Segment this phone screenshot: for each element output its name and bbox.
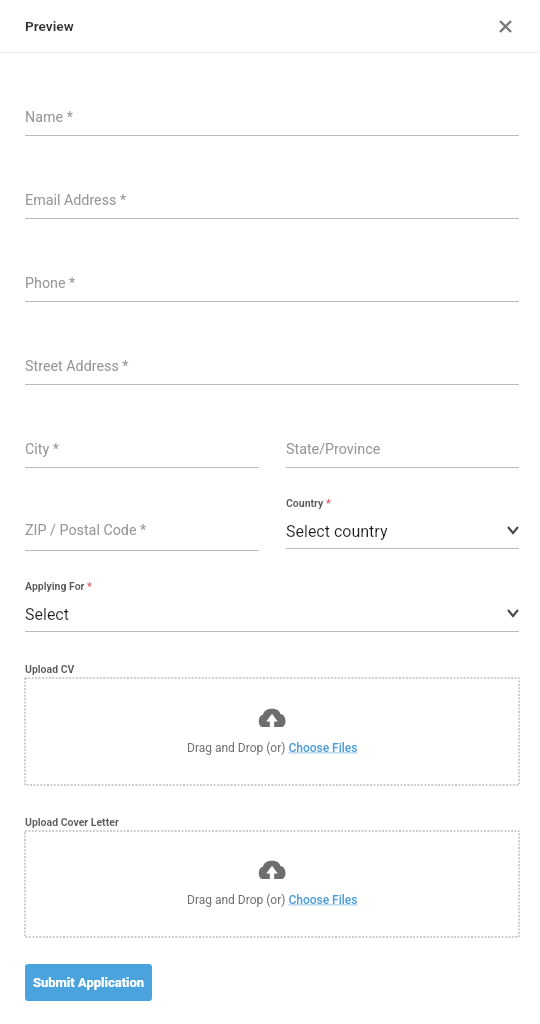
staticText: ZIP / Postal Code * xyxy=(25,522,147,539)
button[interactable]: Close xyxy=(490,11,520,41)
staticText: Name * xyxy=(25,109,73,126)
staticText: Street Address * xyxy=(25,358,129,375)
staticText: Preview xyxy=(25,18,74,34)
button[interactable]: Phone * xyxy=(25,277,519,302)
staticText: State/Province xyxy=(286,441,381,458)
button[interactable]: Drag and Drop (or) Choose Files xyxy=(25,678,519,785)
button[interactable]: Submit Application xyxy=(25,964,152,1001)
staticText: Country * xyxy=(286,497,331,509)
button[interactable]: Drag and Drop (or) Choose Files xyxy=(25,831,519,937)
staticText: Applying For * xyxy=(25,580,92,592)
button[interactable]: Street Address * xyxy=(25,360,519,385)
button[interactable]: ZIP / Postal Code * xyxy=(25,524,259,551)
staticText: Phone * xyxy=(25,275,76,292)
staticText: City * xyxy=(25,441,59,458)
staticText: Drag and Drop (or) Choose Files xyxy=(187,741,358,755)
staticText: Upload Cover Letter xyxy=(25,816,119,828)
button[interactable]: Country * xyxy=(286,498,519,549)
button[interactable]: State/Province xyxy=(286,443,519,468)
staticText: Submit Application xyxy=(33,975,145,990)
button[interactable]: Name * xyxy=(25,111,519,136)
staticText: Select country xyxy=(286,522,388,541)
button[interactable]: Applying For * xyxy=(25,581,519,632)
button[interactable]: Email Address * xyxy=(25,194,519,219)
staticText: Drag and Drop (or) Choose Files xyxy=(187,893,358,907)
staticText: Email Address * xyxy=(25,192,127,209)
staticText: Upload CV xyxy=(25,663,75,675)
button[interactable]: City * xyxy=(25,443,259,468)
staticText: Select xyxy=(25,605,69,624)
